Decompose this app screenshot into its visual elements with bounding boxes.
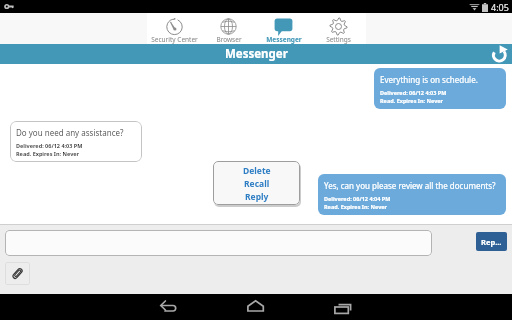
button[interactable]: Delete (213, 164, 300, 177)
staticText: Delete (243, 165, 271, 177)
staticText: Reply (245, 191, 269, 203)
staticText: Messenger (266, 35, 302, 44)
button[interactable]: Message input (5, 230, 432, 256)
staticText: Read. Expires In: Never (324, 203, 388, 210)
button[interactable]: Back (152, 294, 186, 320)
button[interactable]: Refresh (491, 45, 509, 63)
staticText: Read. Expires In: Never (16, 150, 80, 157)
button[interactable]: Home (239, 294, 273, 320)
staticText: Delivered: 06/12 4:03 PM (380, 89, 447, 96)
button[interactable]: Rep... (476, 232, 507, 251)
button[interactable]: Do you need any assistance? (10, 121, 142, 162)
staticText: Yes, can you please review all the docum… (324, 180, 496, 191)
staticText: Browser (216, 35, 242, 44)
button[interactable]: Messenger (256, 13, 311, 44)
button[interactable]: Security Center (147, 13, 201, 44)
button[interactable]: Reply (213, 190, 300, 203)
staticText: Delivered: 06/12 4:04 PM (324, 195, 391, 202)
staticText: Read. Expires In: Never (380, 97, 444, 104)
button[interactable]: Settings (311, 13, 366, 44)
staticText: Recall (244, 178, 270, 190)
button[interactable]: Yes, can you please review all the docum… (318, 174, 506, 215)
button[interactable]: Attach file (5, 262, 30, 285)
staticText: Rep... (481, 237, 502, 247)
staticText: Delivered: 06/12 4:03 PM (16, 142, 83, 149)
button[interactable]: Recall (213, 177, 300, 190)
staticText: 4:05 (491, 1, 509, 13)
staticText: Everything is on schedule. (380, 74, 478, 85)
button[interactable]: Browser (201, 13, 256, 44)
button[interactable]: Recent apps (326, 294, 360, 320)
staticText: Do you need any assistance? (16, 127, 124, 138)
button[interactable]: Everything is on schedule. (374, 68, 506, 109)
staticText: Settings (326, 35, 351, 44)
staticText: Messenger (225, 46, 288, 62)
staticText: Security Center (151, 35, 198, 44)
